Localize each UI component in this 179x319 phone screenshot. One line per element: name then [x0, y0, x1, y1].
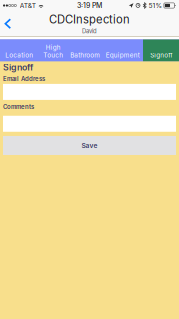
- staticText: Comments: [3, 103, 34, 111]
- button[interactable]: Bathroom: [68, 39, 102, 61]
- button[interactable]: Equipment: [102, 39, 143, 61]
- button[interactable]: High Touch: [38, 39, 68, 61]
- staticText: Location: [5, 51, 33, 59]
- staticText: Signoff: [150, 51, 172, 59]
- staticText: CDCInspection: [49, 13, 130, 26]
- staticText: AT&T: [20, 1, 36, 10]
- staticText: David: [82, 28, 97, 35]
- staticText: Bathroom: [70, 51, 100, 59]
- staticText: High Touch: [43, 44, 63, 59]
- button[interactable]: Save: [3, 136, 176, 155]
- staticText: Signoff: [3, 62, 33, 73]
- button[interactable]: Signoff: [143, 39, 179, 61]
- staticText: Save: [81, 141, 97, 149]
- staticText: 3:19 PM: [77, 1, 102, 10]
- button[interactable]: Location: [0, 39, 38, 61]
- button[interactable]: Back: [0, 12, 17, 35]
- staticText: 51%: [148, 1, 162, 10]
- staticText: Email Address: [3, 75, 45, 82]
- staticText: Equipment: [105, 51, 139, 59]
